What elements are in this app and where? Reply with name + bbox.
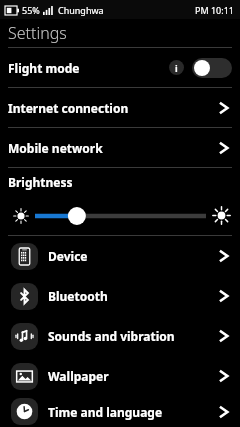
staticText: Chunghwa (58, 4, 104, 16)
staticText: Mobile network (8, 140, 218, 156)
button[interactable]: Device (0, 236, 240, 276)
staticText: i (175, 62, 178, 74)
button[interactable]: Mobile network (0, 128, 240, 167)
staticText: Sounds and vibration (48, 328, 218, 344)
button[interactable]: Info about flight mode (169, 60, 184, 75)
button[interactable]: Brightness slider (0, 196, 240, 235)
button[interactable]: Wallpaper (0, 356, 240, 396)
button[interactable]: Flight mode (0, 48, 240, 87)
staticText: Bluetooth (48, 288, 218, 304)
button[interactable]: Internet connection (0, 88, 240, 127)
button[interactable]: Time and language (0, 396, 240, 427)
staticText: Internet connection (8, 100, 218, 116)
staticText: Brightness (8, 174, 73, 190)
button[interactable]: Flight mode toggle (192, 58, 232, 78)
staticText: Device (48, 248, 218, 264)
button[interactable]: Sounds and vibration (0, 316, 240, 356)
staticText: Wallpaper (48, 368, 218, 384)
staticText: Time and language (48, 404, 218, 420)
staticText: Settings (8, 22, 67, 44)
staticText: Flight mode (8, 60, 169, 76)
staticText: 55% (22, 4, 40, 16)
button[interactable]: Bluetooth (0, 276, 240, 316)
staticText: PM 10:11 (195, 4, 234, 16)
